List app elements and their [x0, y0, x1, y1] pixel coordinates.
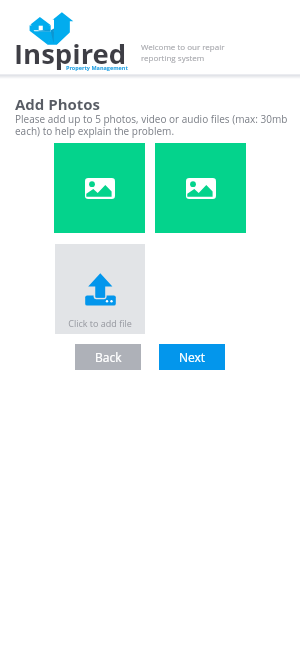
button[interactable]: Next [159, 344, 225, 370]
staticText: Please add up to 5 photos, video or audi… [15, 112, 288, 138]
staticText: Back [95, 349, 122, 365]
staticText: Property Management [66, 64, 128, 71]
button[interactable]: Add file [55, 244, 145, 334]
staticText: Next [179, 349, 206, 365]
staticText: Inspired [14, 35, 127, 72]
staticText: Add Photos [15, 94, 101, 114]
button[interactable]: Uploaded photo [54, 143, 145, 233]
staticText: Welcome to our repair reporting system [141, 41, 225, 63]
button[interactable]: Back [75, 344, 141, 370]
other: Add file [85, 273, 116, 305]
button[interactable]: Uploaded photo [155, 143, 246, 233]
staticText: Click to add file [55, 317, 145, 329]
